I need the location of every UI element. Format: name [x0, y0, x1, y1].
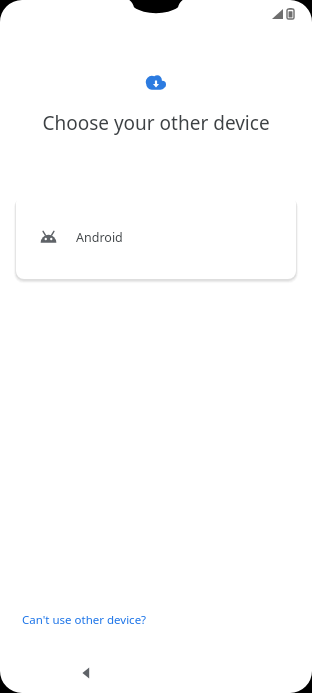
staticText: Can't use other device?: [22, 612, 147, 628]
button[interactable]: Can't use other device?: [0, 604, 312, 636]
button[interactable]: Back: [66, 654, 104, 692]
button[interactable]: Android: [16, 195, 296, 279]
staticText: Android: [76, 229, 123, 246]
staticText: Choose your other device: [42, 110, 270, 136]
